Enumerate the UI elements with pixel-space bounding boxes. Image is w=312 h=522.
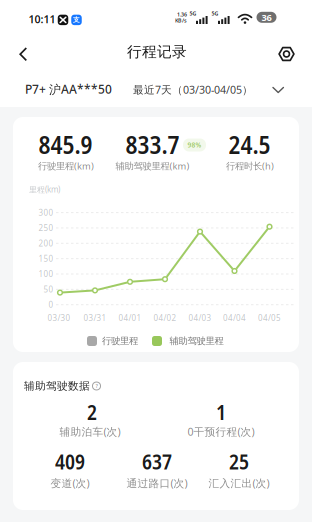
staticText: 03/30 xyxy=(47,313,70,323)
staticText: 04/02 xyxy=(153,313,176,323)
button[interactable]: Back xyxy=(10,41,36,67)
staticText: 行驶里程 xyxy=(102,335,138,347)
staticText: P7+ 沪AA***50 xyxy=(25,81,112,97)
staticText: 250 xyxy=(38,223,53,233)
staticText: 通过路口(次) xyxy=(126,476,187,490)
staticText: 03/31 xyxy=(83,313,106,323)
staticText: 1 xyxy=(216,398,226,426)
staticText: 行程时长(h) xyxy=(226,160,274,172)
staticText: 98% xyxy=(187,141,201,149)
button[interactable]: Settings xyxy=(273,41,299,67)
staticText: 辅助驾驶里程(km) xyxy=(115,160,189,172)
staticText: ? xyxy=(95,382,97,390)
staticText: 25 xyxy=(229,447,249,475)
staticText: 支 xyxy=(73,16,80,24)
staticText: 5G xyxy=(189,10,196,17)
staticText: KB/s xyxy=(175,17,187,24)
staticText: 10:11 xyxy=(28,12,55,26)
button[interactable]: Date range xyxy=(133,77,289,102)
staticText: 200 xyxy=(38,238,53,249)
staticText: 1.36 xyxy=(177,11,187,18)
staticText: 2 xyxy=(87,398,97,426)
staticText: 100 xyxy=(38,269,53,279)
staticText: 150 xyxy=(38,253,53,264)
staticText: 36 xyxy=(261,11,271,23)
staticText: 04/03 xyxy=(188,313,211,323)
staticText: 409 xyxy=(55,447,85,475)
staticText: 变道(次) xyxy=(50,476,89,490)
staticText: 24.5 xyxy=(228,128,270,161)
staticText: 里程(km) xyxy=(29,184,60,195)
staticText: 行驶里程(km) xyxy=(38,160,94,172)
staticText: 5G xyxy=(211,10,218,17)
staticText: 最近7天（03/30-04/05） xyxy=(133,82,253,97)
staticText: 300 xyxy=(38,207,53,218)
button[interactable]: P7+ 沪AA***50 xyxy=(25,77,125,101)
button[interactable]: About assisted driving data xyxy=(90,379,103,392)
staticText: 04/05 xyxy=(258,313,281,323)
staticText: 833.7 xyxy=(125,128,179,161)
staticText: 辅助驾驶数据 xyxy=(24,379,90,392)
staticText: 0 xyxy=(48,299,53,310)
staticText: 汇入汇出(次) xyxy=(208,476,269,490)
staticText: 辅助驾驶里程 xyxy=(169,335,223,347)
staticText: 50 xyxy=(43,284,53,295)
staticText: 637 xyxy=(142,447,172,475)
staticText: 845.9 xyxy=(38,128,92,161)
staticText: 04/01 xyxy=(118,313,141,323)
staticText: 04/04 xyxy=(223,313,246,323)
staticText: 行程记录 xyxy=(127,43,187,61)
staticText: 0干预行程(次) xyxy=(187,424,254,439)
staticText: 辅助泊车(次) xyxy=(59,424,120,439)
